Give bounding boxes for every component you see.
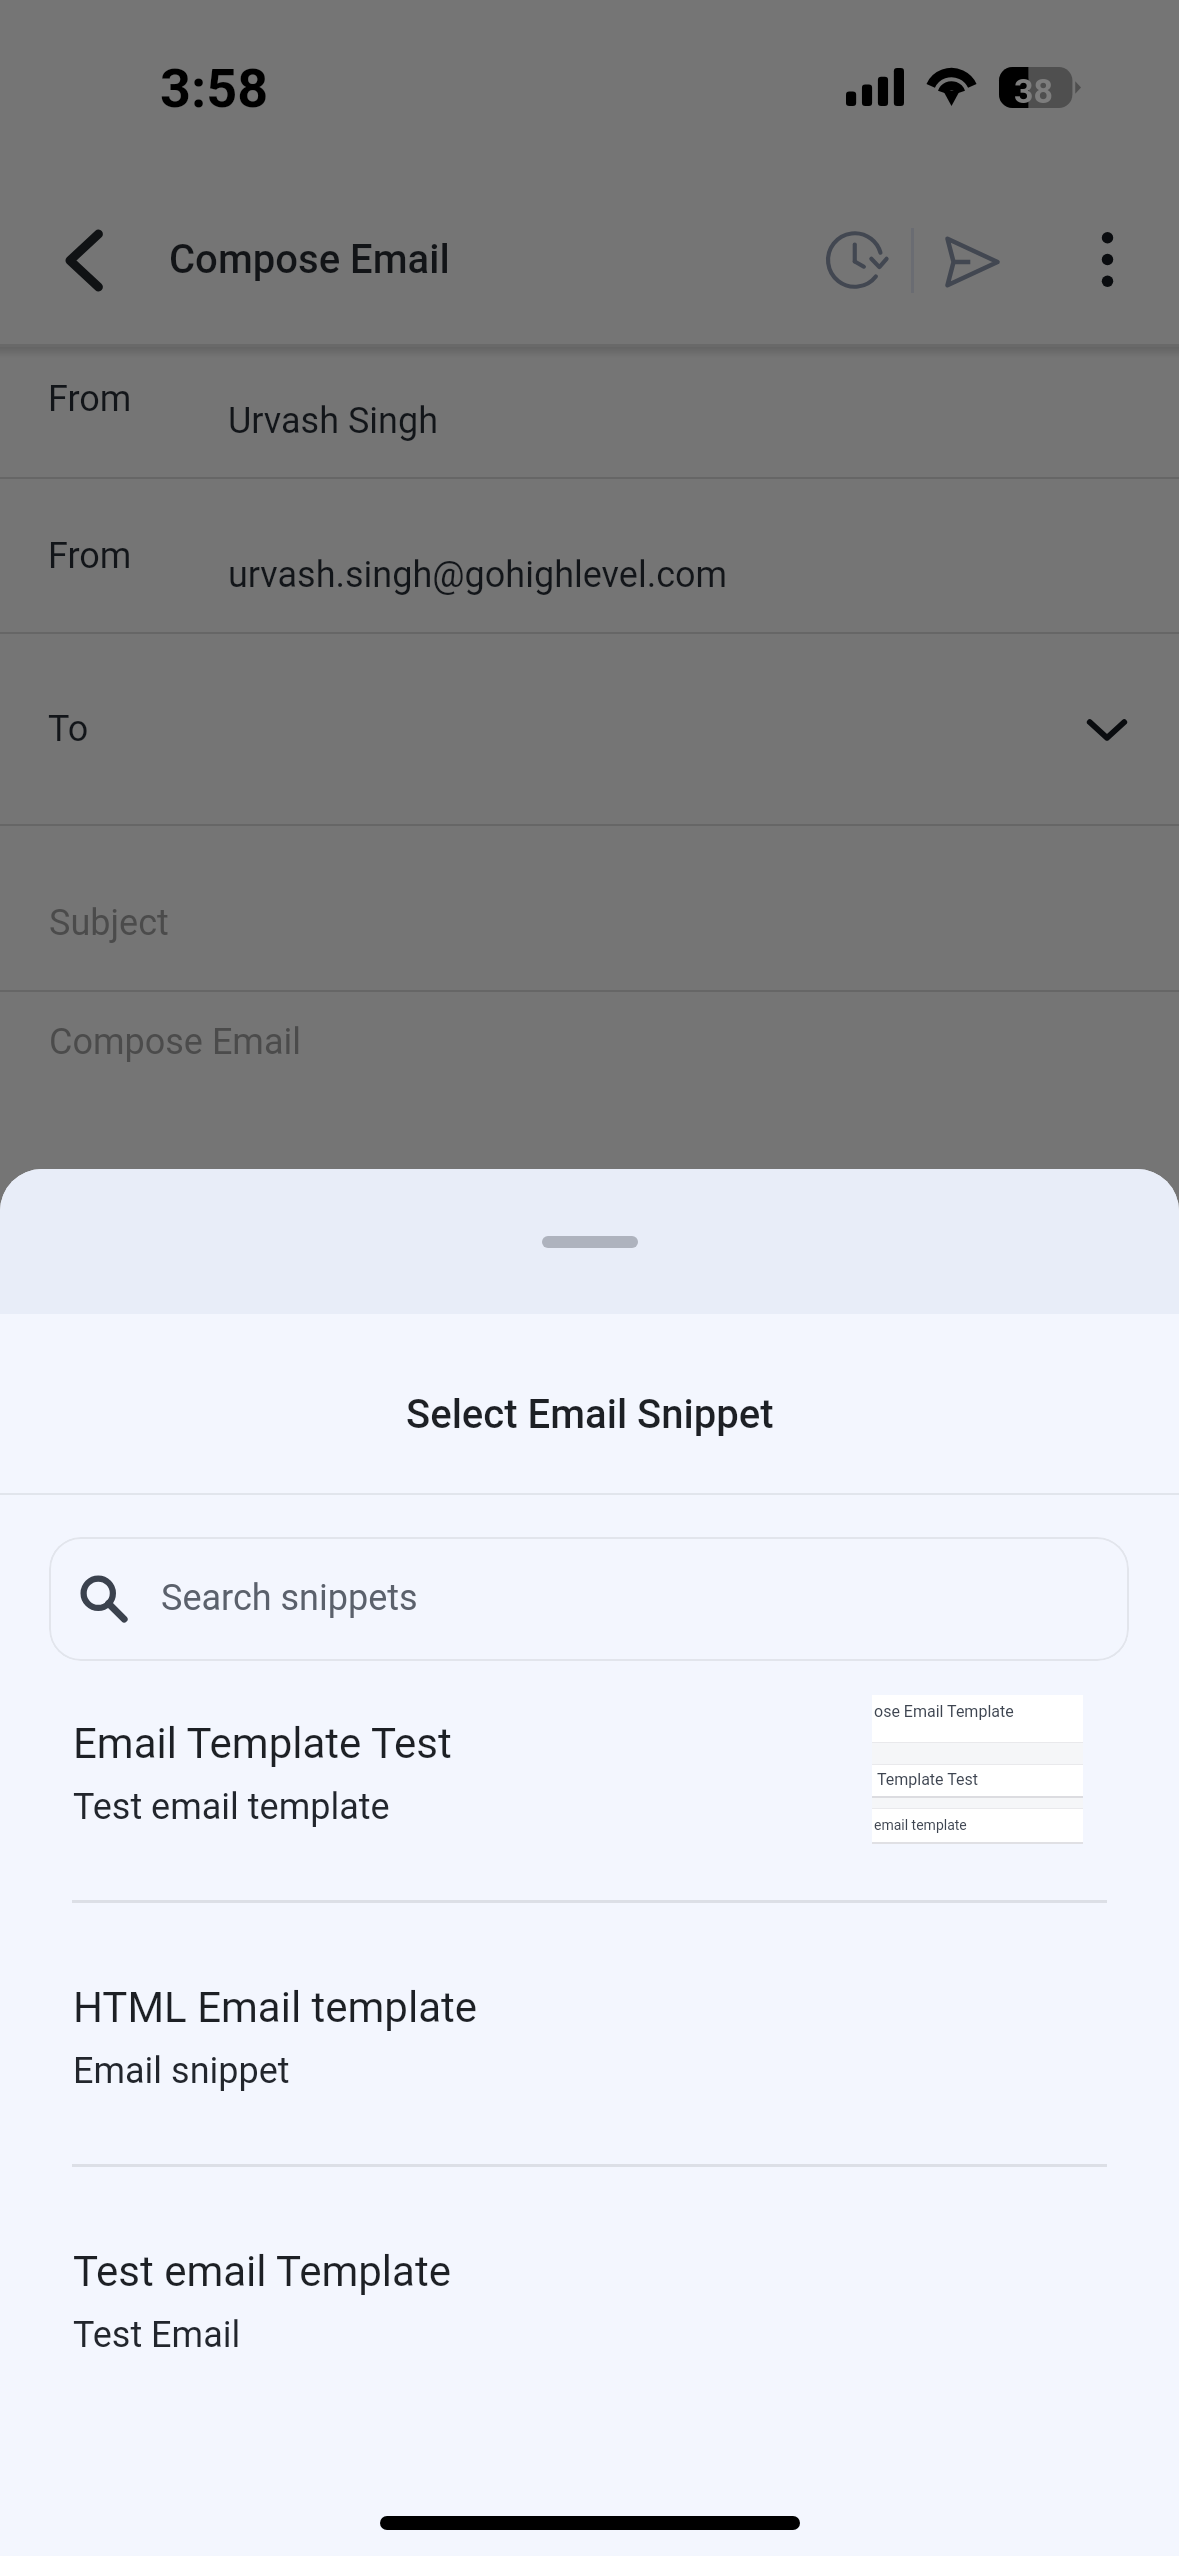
staticText: Email snippet <box>73 2050 290 2092</box>
other: Search <box>80 1575 128 1623</box>
button[interactable]: More options <box>1070 222 1144 296</box>
staticText: To <box>48 708 89 750</box>
staticText: urvash.singh@gohighlevel.com <box>228 554 728 596</box>
staticText: email template <box>874 1817 967 1833</box>
other: Back <box>65 229 103 292</box>
staticText: Test Email <box>73 2314 241 2356</box>
button[interactable]: To <box>0 634 1179 824</box>
button[interactable]: Email Template Test <box>0 1703 1179 1967</box>
staticText: Template Test <box>877 1770 978 1789</box>
staticText: Subject <box>49 902 169 944</box>
button[interactable]: From <box>0 347 1179 477</box>
staticText: From <box>48 535 132 577</box>
staticText: From <box>48 378 132 420</box>
staticText: Compose Email <box>49 1021 301 1063</box>
other: Schedule send <box>826 229 888 291</box>
other: More options <box>1101 232 1114 287</box>
staticText: Test email Template <box>73 2247 451 2296</box>
button[interactable]: Back <box>42 218 126 302</box>
other: Expand recipients <box>1086 717 1128 743</box>
staticText: Select Email Snippet <box>406 1391 774 1438</box>
button[interactable]: Schedule send <box>796 200 914 318</box>
button[interactable]: Send <box>930 221 1012 303</box>
button[interactable]: Search <box>49 1537 1129 1661</box>
staticText: Email Template Test <box>73 1719 452 1768</box>
staticText: 3:58 <box>160 57 269 120</box>
button[interactable]: Test email Template <box>0 2231 1179 2495</box>
staticText: Search snippets <box>161 1577 418 1619</box>
staticText: 38 <box>1014 71 1054 111</box>
button[interactable]: HTML Email template <box>0 1967 1179 2231</box>
staticText: HTML Email template <box>73 1983 478 2032</box>
staticText: Urvash Singh <box>228 400 439 442</box>
other: Send <box>945 237 1000 287</box>
staticText: Test email template <box>73 1786 390 1828</box>
button[interactable]: From <box>0 479 1179 632</box>
staticText: Compose Email <box>169 236 450 283</box>
staticText: ose Email Template <box>874 1702 1014 1721</box>
